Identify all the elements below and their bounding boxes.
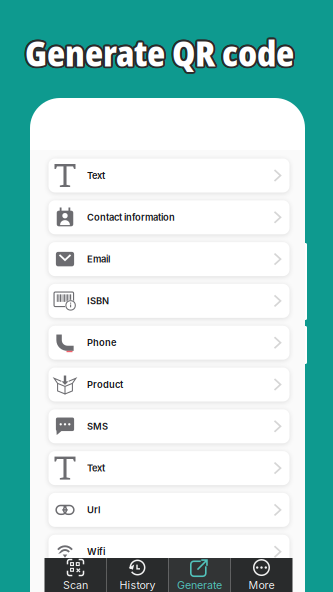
staticText: Text xyxy=(87,462,105,474)
button[interactable]: Wifi xyxy=(48,535,289,569)
staticText: Text xyxy=(87,170,105,181)
staticText: Generate QR code xyxy=(27,30,296,77)
button[interactable]: Product xyxy=(48,367,289,401)
button[interactable]: Text xyxy=(48,451,289,485)
staticText: ISBN xyxy=(87,295,109,307)
staticText: Product xyxy=(87,379,123,390)
staticText: Generate QR code xyxy=(27,28,296,76)
button[interactable]: ISBN xyxy=(48,284,289,318)
staticText: Generate QR code xyxy=(24,31,293,78)
staticText: Generate QR code xyxy=(25,27,294,75)
staticText: Email xyxy=(87,253,110,265)
staticText: Url xyxy=(87,504,100,516)
staticText: Generate QR code xyxy=(26,28,295,75)
staticText: Generate QR code xyxy=(27,29,296,77)
staticText: Generate QR code xyxy=(23,28,292,76)
button[interactable]: Email xyxy=(48,242,289,276)
staticText: Generate QR code xyxy=(23,30,292,77)
staticText: More xyxy=(248,578,274,591)
staticText: History xyxy=(119,578,155,591)
button[interactable]: SMS xyxy=(48,409,289,443)
staticText: Phone xyxy=(87,337,117,348)
staticText: Generate QR code xyxy=(26,31,295,78)
button[interactable]: Scan xyxy=(44,558,106,592)
staticText: Wifi xyxy=(87,546,105,557)
staticText: Generate QR code xyxy=(25,31,294,78)
button[interactable]: Phone xyxy=(48,326,289,360)
button[interactable]: Text xyxy=(48,158,289,192)
button[interactable]: Generate xyxy=(168,558,230,592)
staticText: Scan xyxy=(63,578,88,591)
button[interactable]: More xyxy=(230,558,292,592)
button[interactable]: Url xyxy=(48,493,289,527)
staticText: Generate QR code xyxy=(25,29,294,77)
staticText: Contact information xyxy=(87,212,175,223)
staticText: Generate xyxy=(177,578,222,591)
staticText: SMS xyxy=(87,421,108,432)
button[interactable]: History xyxy=(106,558,168,592)
button[interactable]: Contact information xyxy=(48,200,289,234)
staticText: Generate QR code xyxy=(24,28,293,75)
staticText: Generate QR code xyxy=(23,29,292,77)
